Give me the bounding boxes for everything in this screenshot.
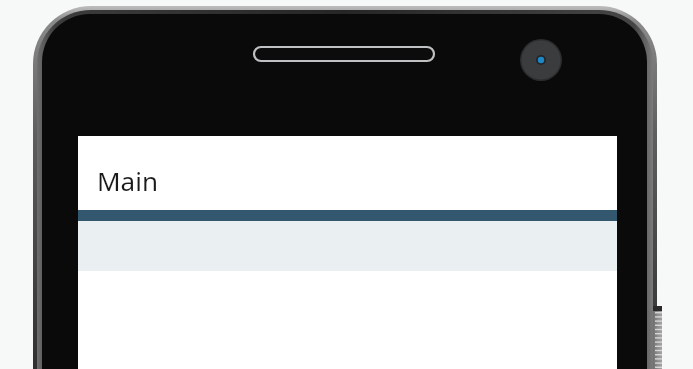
button[interactable]: Main <box>78 136 617 210</box>
button[interactable]: Power button <box>653 309 662 369</box>
other: Front camera <box>520 39 562 81</box>
staticText: Main <box>97 163 158 198</box>
